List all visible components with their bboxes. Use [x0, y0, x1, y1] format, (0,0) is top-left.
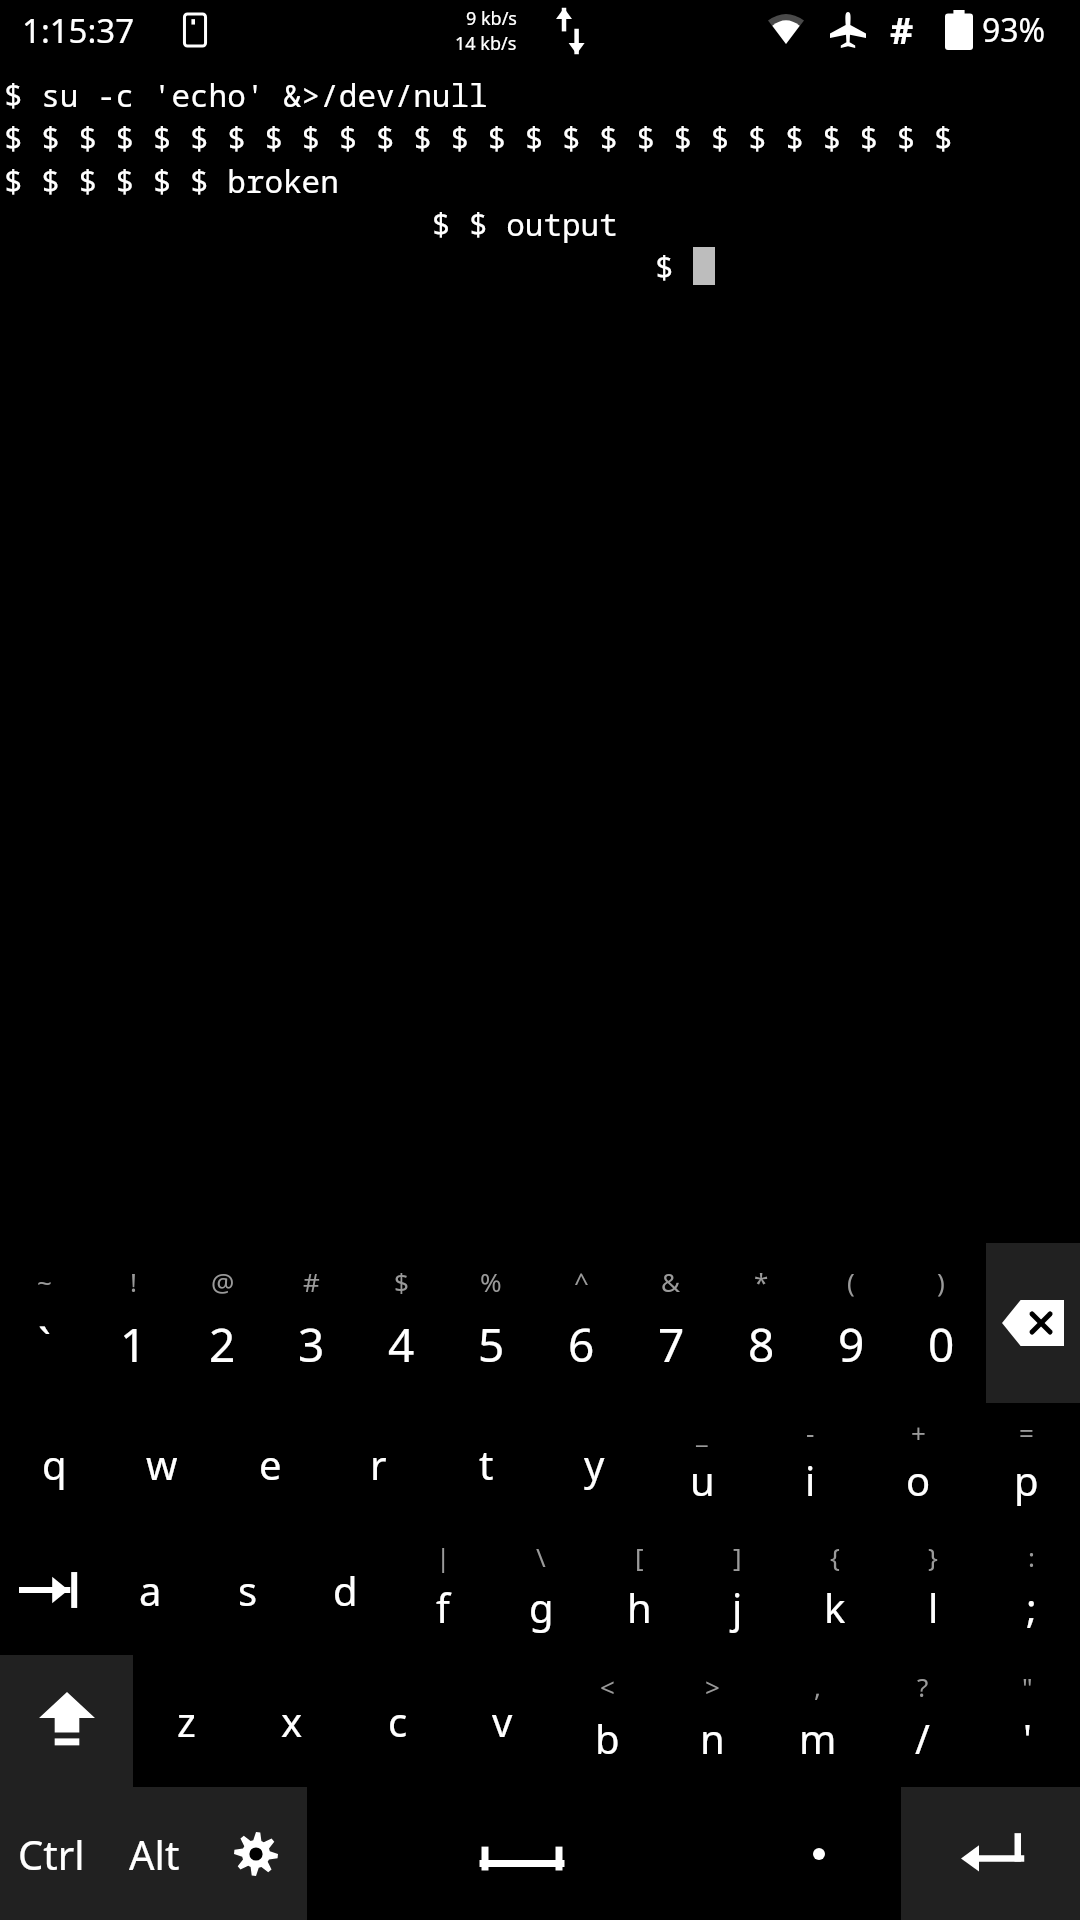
staticText: 93% [982, 8, 1046, 52]
staticText: 4 [388, 1313, 415, 1376]
staticText: 5 [478, 1313, 505, 1376]
button[interactable]: Backspace [986, 1243, 1080, 1403]
staticText: Alt [129, 1827, 180, 1881]
button[interactable]: - [756, 1403, 864, 1525]
button[interactable]: y [540, 1403, 648, 1525]
staticText: e [259, 1437, 282, 1491]
staticText: : [1028, 1539, 1035, 1574]
button[interactable]: e [216, 1403, 324, 1525]
button[interactable]: ~ [0, 1243, 89, 1403]
staticText: } [928, 1539, 938, 1574]
staticText: = [1019, 1415, 1034, 1450]
button[interactable]: [ [590, 1525, 688, 1655]
staticText: ] [733, 1539, 742, 1574]
staticText: k [824, 1580, 846, 1634]
staticText: ; [1026, 1580, 1037, 1634]
staticText: # [890, 6, 914, 55]
button[interactable]: * [716, 1243, 806, 1403]
staticText: 9 kb/s [466, 6, 517, 31]
button[interactable]: r [324, 1403, 432, 1525]
staticText: - [806, 1415, 815, 1450]
button[interactable]: Alt [103, 1787, 205, 1920]
staticText: ^ [574, 1264, 589, 1299]
staticText: 6 [568, 1313, 595, 1376]
button[interactable]: @ [178, 1243, 267, 1403]
staticText: m [799, 1711, 837, 1765]
button[interactable]: ] [688, 1525, 786, 1655]
button[interactable]: ^ [536, 1243, 626, 1403]
staticText: 9 [838, 1313, 865, 1376]
button[interactable]: , [765, 1655, 870, 1787]
staticText: p [1014, 1453, 1039, 1507]
staticText: ) [937, 1264, 945, 1299]
button[interactable]: x [239, 1655, 345, 1787]
staticText: @ [211, 1264, 235, 1299]
staticText: " [1022, 1669, 1033, 1704]
staticText: d [333, 1563, 358, 1617]
button[interactable]: : [982, 1525, 1080, 1655]
staticText: & [661, 1264, 681, 1299]
button[interactable]: $ [356, 1243, 446, 1403]
button[interactable]: < [555, 1655, 660, 1787]
button[interactable]: } [884, 1525, 982, 1655]
staticText: f [436, 1580, 450, 1634]
button[interactable]: Tab [0, 1525, 102, 1655]
button[interactable]: > [660, 1655, 765, 1787]
button[interactable]: ! [89, 1243, 178, 1403]
button[interactable]: q [0, 1403, 108, 1525]
button[interactable]: w [108, 1403, 216, 1525]
button[interactable]: s [199, 1525, 296, 1655]
staticText: b [595, 1711, 620, 1765]
button[interactable]: d [296, 1525, 394, 1655]
staticText: { [830, 1539, 840, 1574]
staticText: ~ [37, 1264, 52, 1299]
staticText: 1:15:37 [22, 8, 135, 53]
button[interactable]: " [975, 1655, 1080, 1787]
button[interactable]: _ [648, 1403, 756, 1525]
button[interactable]: # [267, 1243, 356, 1403]
staticText: ( [847, 1264, 855, 1299]
button[interactable]: ( [806, 1243, 896, 1403]
button[interactable]: & [626, 1243, 716, 1403]
staticText: w [146, 1437, 178, 1491]
staticText: 7 [658, 1313, 685, 1376]
button[interactable]: Enter [901, 1787, 1080, 1920]
button[interactable]: ? [870, 1655, 975, 1787]
button[interactable]: = [972, 1403, 1080, 1525]
button[interactable]: Shift [0, 1655, 133, 1787]
button[interactable]: v [450, 1655, 555, 1787]
button[interactable]: ) [896, 1243, 986, 1403]
staticText: j [732, 1580, 743, 1634]
staticText: v [492, 1694, 513, 1748]
staticText: 14 kb/s [455, 31, 517, 56]
staticText: i [805, 1453, 816, 1507]
staticText: 2 [209, 1313, 236, 1376]
staticText: n [700, 1711, 725, 1765]
button[interactable]: { [786, 1525, 884, 1655]
staticText: + [911, 1415, 926, 1450]
button[interactable]: + [864, 1403, 972, 1525]
staticText: o [906, 1453, 931, 1507]
staticText: 8 [748, 1313, 775, 1376]
button[interactable]: Period [737, 1787, 901, 1920]
staticText: $ [4, 246, 693, 288]
button[interactable]: z [133, 1655, 239, 1787]
staticText: 0 [928, 1313, 955, 1376]
staticText: # [303, 1264, 320, 1299]
staticText: 3 [298, 1313, 325, 1376]
button[interactable]: a [102, 1525, 199, 1655]
button[interactable]: Settings [205, 1787, 307, 1920]
staticText: x [281, 1694, 303, 1748]
button[interactable]: | [394, 1525, 492, 1655]
button[interactable]: Ctrl [0, 1787, 103, 1920]
button[interactable]: c [345, 1655, 450, 1787]
button[interactable]: \ [492, 1525, 590, 1655]
staticText: / [915, 1711, 930, 1765]
staticText: r [370, 1437, 387, 1491]
button[interactable]: t [432, 1403, 540, 1525]
staticText: Ctrl [18, 1827, 85, 1881]
staticText: h [627, 1580, 652, 1634]
button[interactable]: % [446, 1243, 536, 1403]
button[interactable]: Space [307, 1787, 737, 1920]
staticText: c [388, 1694, 408, 1748]
